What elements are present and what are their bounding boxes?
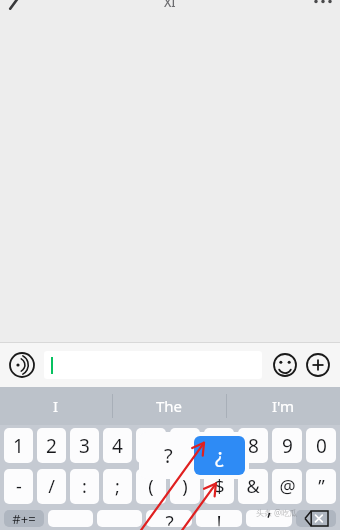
- button[interactable]: -: [4, 469, 33, 504]
- staticText: I'm: [272, 396, 295, 416]
- staticText: $: [214, 474, 225, 499]
- button[interactable]: Back: [0, 0, 34, 14]
- button[interactable]: 0: [306, 428, 336, 463]
- button[interactable]: 1: [4, 428, 33, 463]
- staticText: ): [182, 474, 188, 499]
- button[interactable]: 5: [136, 428, 166, 463]
- staticText: ;: [115, 474, 120, 499]
- button[interactable]: Emoji: [271, 351, 299, 379]
- staticText: &: [246, 474, 260, 499]
- staticText: @: [279, 474, 296, 499]
- button[interactable]: #+=: [4, 510, 44, 527]
- button[interactable]: 3: [70, 428, 99, 463]
- button[interactable]: &: [238, 469, 268, 504]
- button[interactable]: 8: [238, 428, 268, 463]
- button[interactable]: /: [37, 469, 66, 504]
- staticText: 3: [79, 433, 90, 459]
- staticText: 头条 @吃瓜: [256, 507, 298, 518]
- button[interactable]: $: [204, 469, 234, 504]
- button[interactable]: 4: [103, 428, 132, 463]
- staticText: 2: [46, 433, 57, 459]
- staticText: 4: [112, 433, 123, 459]
- staticText: ’: [267, 510, 271, 524]
- button[interactable]: ,: [97, 510, 142, 527]
- staticText: The: [156, 396, 183, 416]
- staticText: #+=: [12, 510, 36, 527]
- button[interactable]: I'm: [227, 387, 340, 425]
- button[interactable]: .: [48, 510, 93, 527]
- staticText: !: [216, 510, 222, 527]
- button[interactable]: 2: [37, 428, 66, 463]
- staticText: ”: [318, 474, 325, 499]
- staticText: -: [16, 474, 22, 499]
- button[interactable]: The: [113, 387, 226, 425]
- staticText: XI: [164, 0, 176, 8]
- staticText: 1: [13, 433, 24, 459]
- staticText: ¿: [215, 442, 224, 469]
- button[interactable]: ¿: [194, 436, 245, 475]
- button[interactable]: ’: [246, 510, 292, 527]
- staticText: :: [82, 474, 87, 499]
- staticText: I: [53, 396, 59, 416]
- staticText: /: [48, 474, 55, 499]
- staticText: 9: [282, 433, 293, 459]
- button[interactable]: (: [136, 469, 166, 504]
- staticText: 8: [248, 433, 259, 459]
- button[interactable]: 7: [204, 428, 234, 463]
- staticText: 0: [316, 433, 327, 459]
- button[interactable]: ?: [146, 510, 192, 527]
- button[interactable]: ;: [103, 469, 132, 504]
- button[interactable]: More options: [306, 0, 340, 14]
- button[interactable]: [44, 351, 262, 379]
- button[interactable]: 9: [272, 428, 302, 463]
- button[interactable]: @: [272, 469, 302, 504]
- staticText: (: [148, 474, 154, 499]
- button[interactable]: ): [170, 469, 200, 504]
- staticText: 7: [214, 433, 225, 459]
- staticText: ?: [164, 442, 173, 469]
- button[interactable]: !: [196, 510, 242, 527]
- button[interactable]: More functions: [304, 351, 332, 379]
- staticText: ?: [165, 510, 174, 527]
- button[interactable]: I: [0, 387, 112, 425]
- button[interactable]: Backspace: [296, 510, 336, 527]
- button[interactable]: 6: [170, 428, 200, 463]
- button[interactable]: :: [70, 469, 99, 504]
- button[interactable]: ?: [143, 436, 194, 475]
- button[interactable]: Voice input: [8, 351, 36, 379]
- button[interactable]: ”: [306, 469, 336, 504]
